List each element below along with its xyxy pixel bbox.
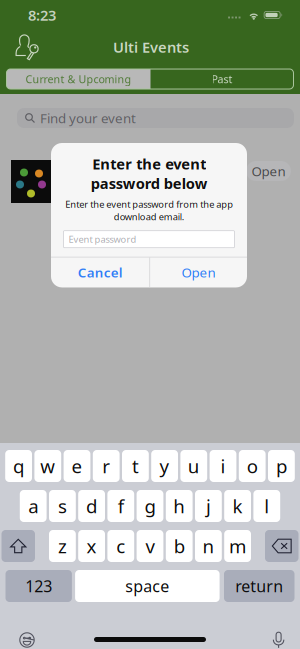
staticText: f xyxy=(118,494,124,518)
staticText: m xyxy=(229,534,246,558)
button[interactable]: Past xyxy=(150,69,293,89)
button[interactable]: q xyxy=(5,450,32,482)
staticText: Enter the event password from the app do… xyxy=(65,198,233,223)
button[interactable]: g xyxy=(137,490,163,522)
button[interactable]: Shift xyxy=(1,530,35,562)
staticText: Conference 2024 xyxy=(60,182,177,202)
button[interactable]: i xyxy=(210,450,236,482)
staticText: r xyxy=(102,454,110,478)
button[interactable]: d xyxy=(78,490,105,522)
button[interactable]: Account xyxy=(0,31,49,63)
staticText: Ulti Events xyxy=(113,37,189,57)
button[interactable]: Dictation xyxy=(263,627,295,649)
button[interactable]: x xyxy=(78,530,105,562)
staticText: a xyxy=(28,494,38,518)
button[interactable]: w xyxy=(34,450,61,482)
staticText: l xyxy=(264,494,269,518)
staticText: w xyxy=(40,454,55,478)
button[interactable]: Cancel xyxy=(51,257,149,287)
staticText: 8:23 xyxy=(28,5,56,25)
staticText: x xyxy=(87,534,97,558)
button[interactable]: k xyxy=(224,490,251,522)
staticText: h xyxy=(173,494,185,518)
button[interactable]: o xyxy=(239,450,266,482)
staticText: z xyxy=(58,534,67,558)
staticText: Open xyxy=(251,162,285,180)
button[interactable]: Current & Upcoming xyxy=(6,69,150,89)
staticText: Enter the event password below xyxy=(90,154,207,193)
button[interactable]: space xyxy=(75,570,220,602)
staticText: space xyxy=(125,575,169,597)
button[interactable]: return xyxy=(224,570,294,602)
button[interactable]: v xyxy=(137,530,163,562)
button[interactable]: Delete xyxy=(265,530,298,562)
staticText: Open xyxy=(182,264,216,281)
button[interactable]: c xyxy=(107,530,134,562)
staticText: Orlando, Florida xyxy=(60,207,149,223)
button[interactable]: s xyxy=(49,490,76,522)
button[interactable]: Open xyxy=(150,257,247,287)
button[interactable]: j xyxy=(195,490,222,522)
staticText: Global Impact xyxy=(60,161,160,180)
staticText: Cancel xyxy=(78,264,123,281)
staticText: d xyxy=(86,494,97,518)
staticText: n xyxy=(202,534,214,558)
button[interactable]: z xyxy=(49,530,76,562)
staticText: Current & Upcoming xyxy=(25,72,131,86)
button[interactable]: 123 xyxy=(5,570,72,602)
button[interactable]: n xyxy=(195,530,222,562)
staticText: Find your event xyxy=(40,109,136,127)
staticText: i xyxy=(220,454,225,478)
button[interactable]: l xyxy=(253,490,280,522)
staticText: v xyxy=(145,534,154,558)
staticText: c xyxy=(116,534,125,558)
staticText: b xyxy=(174,534,185,558)
staticText: Past xyxy=(211,72,232,86)
button[interactable]: Emoji keyboard xyxy=(11,627,43,649)
staticText: j xyxy=(206,494,211,518)
staticText: return xyxy=(235,575,283,597)
staticText: p xyxy=(276,454,287,478)
button[interactable]: f xyxy=(107,490,134,522)
staticText: k xyxy=(233,494,243,518)
button[interactable]: b xyxy=(166,530,193,562)
button[interactable]: y xyxy=(151,450,178,482)
staticText: o xyxy=(247,454,258,478)
staticText: g xyxy=(144,494,155,518)
staticText: t xyxy=(132,454,139,478)
staticText: y xyxy=(160,454,170,478)
button[interactable]: h xyxy=(166,490,193,522)
staticText: s xyxy=(58,494,67,518)
staticText: Event password xyxy=(68,233,136,245)
staticText: e xyxy=(71,454,82,478)
button[interactable]: t xyxy=(122,450,149,482)
button[interactable]: r xyxy=(93,450,120,482)
button[interactable]: Open xyxy=(246,161,291,181)
button[interactable]: p xyxy=(268,450,295,482)
button[interactable]: u xyxy=(180,450,207,482)
button[interactable]: e xyxy=(64,450,90,482)
staticText: u xyxy=(188,454,200,478)
staticText: q xyxy=(13,454,24,478)
button[interactable]: m xyxy=(224,530,251,562)
button[interactable]: a xyxy=(20,490,47,522)
staticText: 123 xyxy=(25,575,52,597)
